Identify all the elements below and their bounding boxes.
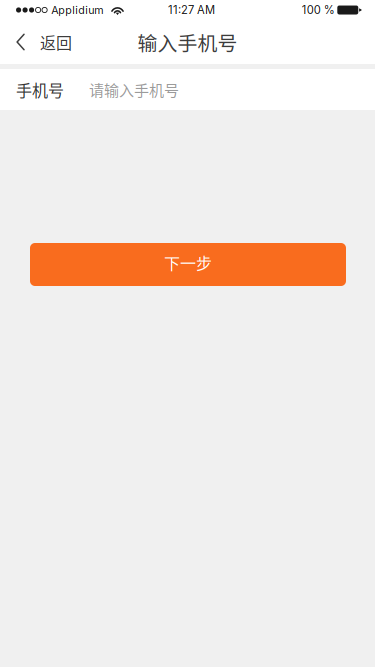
button[interactable]: 返回 <box>0 20 84 64</box>
staticText: 输入手机号 <box>137 28 237 56</box>
staticText: 100 % <box>302 3 335 17</box>
staticText: 11:27 AM <box>168 3 215 17</box>
staticText: 手机号 <box>16 78 64 101</box>
staticText: Applidium <box>51 3 103 16</box>
staticText: 下一步 <box>164 251 212 274</box>
button[interactable]: 下一步 <box>30 243 346 286</box>
button[interactable]: 请输入手机号 <box>89 69 359 110</box>
staticText: 请输入手机号 <box>89 79 179 100</box>
staticText: 返回 <box>40 30 72 54</box>
